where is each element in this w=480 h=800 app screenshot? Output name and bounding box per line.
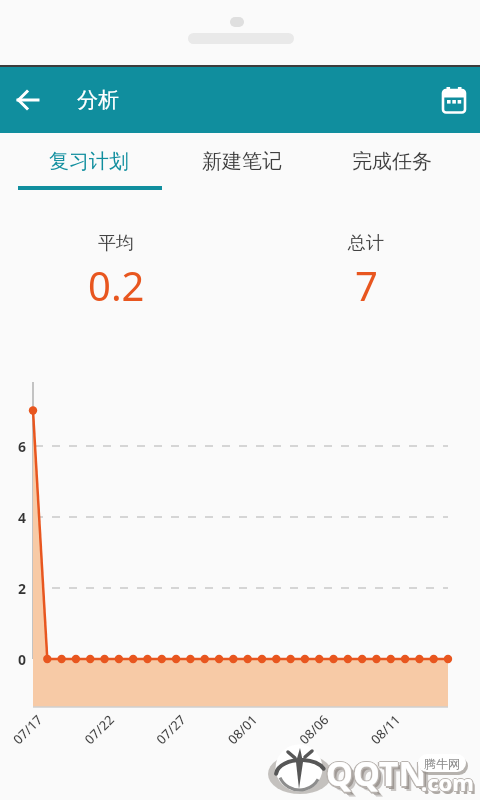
staticText: 完成任务 bbox=[352, 149, 432, 174]
staticText: 总计 bbox=[348, 232, 384, 255]
button[interactable]: 新建笔记 bbox=[169, 133, 315, 189]
staticText: 7 bbox=[355, 258, 378, 310]
button[interactable] bbox=[8, 80, 48, 120]
staticText: 复习计划 bbox=[49, 149, 129, 174]
button[interactable] bbox=[434, 80, 474, 120]
staticText: 新建笔记 bbox=[202, 149, 282, 174]
button[interactable]: 完成任务 bbox=[319, 133, 465, 189]
button[interactable]: 复习计划 bbox=[16, 133, 162, 189]
staticText: 0.2 bbox=[88, 258, 145, 310]
staticText: 分析 bbox=[77, 87, 119, 113]
staticText: 平均 bbox=[98, 232, 134, 255]
